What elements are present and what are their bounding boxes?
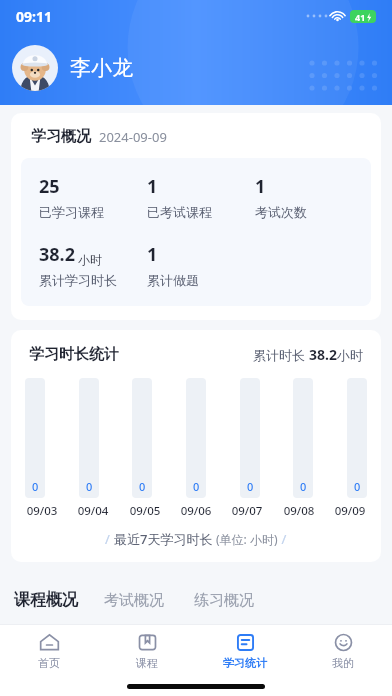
button[interactable]: 首页 [0,625,98,677]
staticText: 考试次数 [255,204,307,220]
button[interactable]: 我的 [294,625,392,677]
staticText: 38.2 [309,345,337,364]
staticText: 累计做题 [147,272,199,288]
staticText: 首页 [38,656,60,670]
staticText: 李小龙 [70,55,133,81]
staticText: 0 [86,479,93,494]
staticText: 已考试课程 [147,204,212,220]
staticText: 25 [39,174,60,199]
staticText: (单位: 小时) [216,531,278,547]
staticText: 最近7天学习时长 [114,530,216,548]
staticText: 课程概况 [14,590,78,610]
staticText: 09/04 [70,503,116,519]
staticText: 38.2 [39,242,75,267]
staticText: 09/08 [276,503,322,519]
staticText: 小时 [337,347,363,363]
staticText: 学习统计 [223,656,267,670]
staticText: 考试概况 [104,591,164,610]
button[interactable]: 考试概况 [100,587,168,614]
staticText: 已学习课程 [39,204,104,220]
staticText: 累计时长 [253,346,309,364]
staticText: 0 [193,479,200,494]
staticText: 0 [139,479,146,494]
staticText: 课程 [136,656,158,670]
staticText: 累计学习时长 [39,272,117,288]
staticText: 09/07 [224,503,270,519]
staticText: 0 [247,479,254,494]
button[interactable]: 课程 [98,625,196,677]
staticText: 09/09 [327,503,373,519]
staticText: / [105,530,114,548]
button[interactable]: 练习概况 [190,587,258,614]
staticText: / [278,530,287,548]
staticText: 学习概况 [31,127,91,146]
staticText: 2024-09-09 [99,128,167,146]
staticText: 0 [300,479,307,494]
staticText: 09:11 [16,7,52,26]
staticText: 1 [147,174,158,199]
staticText: 1 [147,242,158,267]
staticText: 41 [355,11,366,23]
staticText: 09/03 [19,503,65,519]
staticText: 1 [255,174,266,199]
staticText: 练习概况 [194,591,254,610]
staticText: 学习时长统计 [29,345,119,364]
button[interactable]: 学习统计 [196,625,294,677]
button[interactable]: Profile avatar [12,45,58,91]
staticText: 09/06 [173,503,219,519]
staticText: 09/05 [122,503,168,519]
button[interactable]: 课程概况 [10,586,82,614]
staticText: 我的 [332,656,354,670]
staticText: 0 [32,479,39,494]
staticText: 小时 [78,252,102,267]
staticText: 0 [354,479,361,494]
